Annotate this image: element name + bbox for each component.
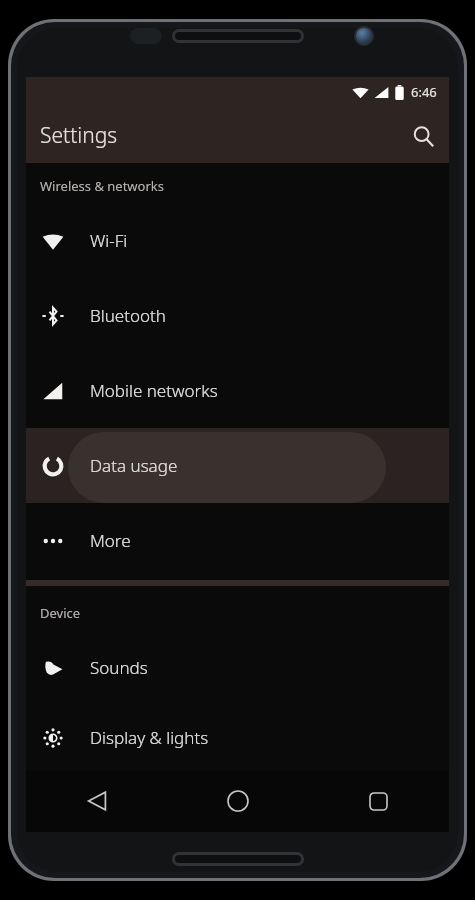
staticText: 6:46 [411,83,437,101]
button[interactable]: Sounds [26,630,449,705]
staticText: Display & lights [90,726,209,749]
staticText: Mobile networks [90,379,218,402]
staticText: Sounds [90,656,148,679]
button[interactable]: Display & lights [26,705,449,770]
button[interactable]: Recent apps [308,770,449,832]
button[interactable]: More [26,503,449,578]
staticText: Bluetooth [90,304,166,327]
staticText: Data usage [90,454,178,477]
button[interactable]: Wi-Fi [26,203,449,278]
button[interactable]: Mobile networks [26,353,449,428]
staticText: Device [40,604,81,622]
button[interactable]: Search [401,114,445,158]
button[interactable]: Home [167,770,308,832]
staticText: More [90,529,131,552]
button[interactable]: Back [26,770,167,832]
staticText: Settings [40,121,118,150]
button[interactable]: Bluetooth [26,278,449,353]
button[interactable]: Data usage [26,428,449,503]
staticText: Wireless & networks [40,177,164,195]
staticText: Wi-Fi [90,229,128,252]
